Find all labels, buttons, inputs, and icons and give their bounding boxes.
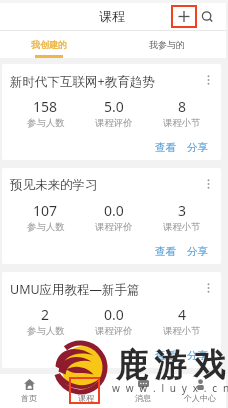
staticText: 参与人数 [27,117,65,129]
button[interactable]: 我创建的 [14,31,83,58]
staticText: 课程评价 [95,117,133,129]
staticText: 0.0 [104,201,124,220]
button[interactable]: 查看 [155,141,176,154]
button[interactable]: 查看 [155,245,176,258]
staticText: 0.0 [104,305,124,324]
staticText: 课程 [78,393,94,403]
staticText: 参与人数 [27,221,65,233]
staticText: 2 [41,305,50,324]
button[interactable]: 课程 [57,374,114,408]
staticText: 5.0 [104,97,124,116]
staticText: 课程评价 [95,325,133,337]
button[interactable]: 分享 [187,349,208,362]
button[interactable]: 首页 [0,374,57,408]
button[interactable]: 消息 [114,374,171,408]
staticText: 个人中心 [184,393,216,403]
staticText: 课程评价 [95,221,133,233]
staticText: 课程 [99,8,125,24]
button[interactable]: 分享 [187,245,208,258]
staticText: 课程小节 [163,325,201,337]
staticText: 4 [178,305,187,324]
button[interactable]: More options [201,73,215,87]
button[interactable]: UMU应用教程—新手篇 [2,272,221,368]
staticText: 预见未来的学习 [10,177,98,193]
button[interactable]: 我参与的 [132,31,201,58]
button[interactable]: 新时代下互联网+教育趋势 [2,64,221,160]
button[interactable]: Search [200,9,216,25]
staticText: 3 [178,201,187,220]
button[interactable]: 预见未来的学习 [2,168,221,264]
staticText: w w w . l u y x . c n [112,381,228,395]
button[interactable]: Add [172,6,196,27]
staticText: 参与人数 [27,325,65,337]
staticText: 课程小节 [163,221,201,233]
staticText: 消息 [135,393,151,403]
staticText: 首页 [21,393,37,403]
staticText: UMU应用教程—新手篇 [10,281,140,298]
button[interactable]: More options [201,281,215,295]
staticText: 158 [33,97,58,116]
button[interactable]: 个人中心 [171,374,228,408]
staticText: 我参与的 [149,39,185,50]
staticText: 8 [178,97,187,116]
button[interactable]: 查看 [155,349,176,362]
staticText: 新时代下互联网+教育趋势 [10,73,155,90]
staticText: 我创建的 [31,39,67,50]
staticText: 107 [33,201,58,220]
button[interactable]: 分享 [187,141,208,154]
staticText: 鹿游戏 [112,345,228,385]
button[interactable]: More options [201,177,215,191]
staticText: 课程小节 [163,117,201,129]
